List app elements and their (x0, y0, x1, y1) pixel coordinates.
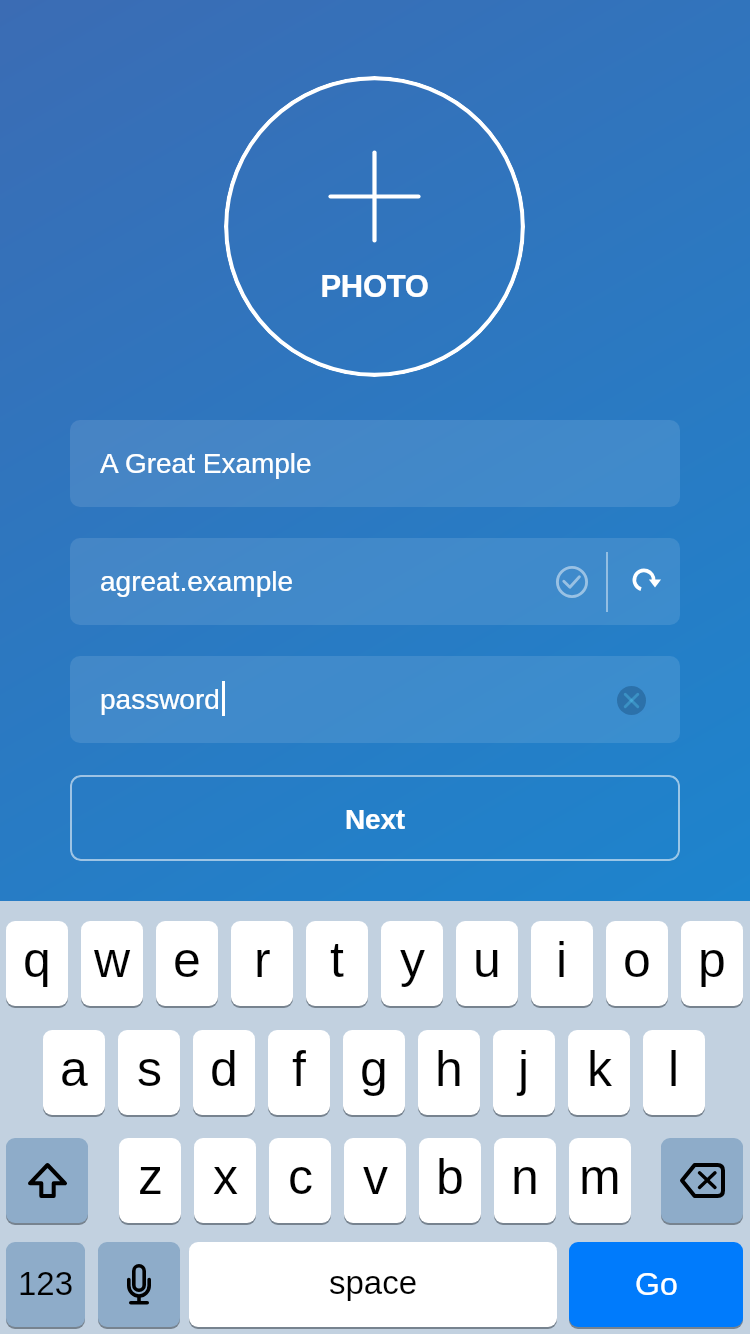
button[interactable]: v (344, 1138, 406, 1223)
staticText: p (698, 932, 726, 988)
staticText: c (288, 1149, 313, 1205)
button[interactable]: o (606, 921, 668, 1006)
other: Regenerate (624, 560, 664, 600)
button[interactable]: 123 (6, 1242, 85, 1327)
button[interactable]: Backspace (661, 1138, 743, 1223)
button[interactable]: m (569, 1138, 631, 1223)
staticText: j (518, 1041, 530, 1097)
button[interactable]: agreat.example (70, 538, 680, 625)
staticText: Go (635, 1266, 678, 1302)
staticText: space (329, 1264, 418, 1301)
staticText: n (511, 1149, 539, 1205)
staticText: l (668, 1041, 680, 1097)
staticText: 123 (18, 1265, 74, 1302)
staticText: g (360, 1041, 388, 1097)
button[interactable]: d (193, 1030, 255, 1115)
button[interactable]: space (189, 1242, 557, 1327)
button[interactable]: f (268, 1030, 330, 1115)
button[interactable]: u (456, 921, 518, 1006)
button[interactable]: a (43, 1030, 105, 1115)
staticText: Next (345, 804, 405, 835)
staticText: r (254, 932, 271, 988)
staticText: z (138, 1149, 163, 1205)
button[interactable]: g (343, 1030, 405, 1115)
button[interactable]: x (194, 1138, 256, 1223)
button[interactable]: Shift (6, 1138, 88, 1223)
staticText: PHOTO (224, 269, 525, 304)
button[interactable]: h (418, 1030, 480, 1115)
staticText: k (587, 1041, 612, 1097)
button[interactable]: r (231, 921, 293, 1006)
button[interactable]: t (306, 921, 368, 1006)
staticText: w (94, 932, 131, 988)
button[interactable]: e (156, 921, 218, 1006)
staticText: t (330, 932, 344, 988)
button[interactable]: Add photo (224, 76, 525, 377)
staticText: v (363, 1149, 388, 1205)
staticText: b (436, 1149, 464, 1205)
staticText: x (213, 1149, 238, 1205)
button[interactable]: b (419, 1138, 481, 1223)
staticText: m (579, 1149, 621, 1205)
button[interactable]: c (269, 1138, 331, 1223)
button[interactable]: k (568, 1030, 630, 1115)
staticText: h (435, 1041, 463, 1097)
staticText: A Great Example (100, 448, 312, 479)
staticText: e (173, 932, 201, 988)
button[interactable]: Next (70, 775, 680, 861)
button[interactable]: s (118, 1030, 180, 1115)
staticText: s (137, 1041, 162, 1097)
staticText: y (400, 932, 425, 988)
staticText: q (23, 932, 51, 988)
button[interactable]: Go (569, 1242, 743, 1327)
button[interactable]: l (643, 1030, 705, 1115)
button[interactable]: A Great Example (70, 420, 680, 507)
button[interactable]: password (70, 656, 680, 743)
staticText: password (100, 684, 220, 715)
button[interactable]: y (381, 921, 443, 1006)
button[interactable]: i (531, 921, 593, 1006)
staticText: a (60, 1041, 88, 1097)
button[interactable]: j (493, 1030, 555, 1115)
staticText: i (556, 932, 568, 988)
button[interactable]: n (494, 1138, 556, 1223)
button[interactable]: z (119, 1138, 181, 1223)
button[interactable]: w (81, 921, 143, 1006)
staticText: u (473, 932, 501, 988)
staticText: d (210, 1041, 238, 1097)
staticText: o (623, 932, 651, 988)
staticText: f (292, 1041, 306, 1097)
button[interactable]: q (6, 921, 68, 1006)
button[interactable]: p (681, 921, 743, 1006)
button[interactable]: Clear text (617, 686, 646, 715)
staticText: agreat.example (100, 566, 294, 597)
button[interactable]: Dictate (98, 1242, 180, 1327)
